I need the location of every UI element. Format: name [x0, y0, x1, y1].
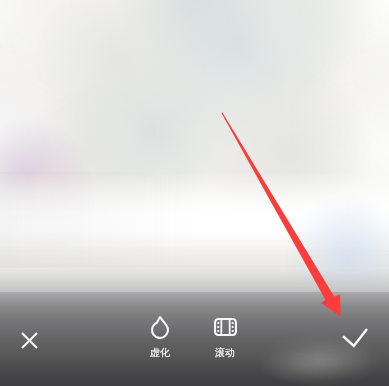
button[interactable]: 虚化: [135, 312, 185, 359]
button[interactable]: 滚动: [200, 312, 250, 359]
staticText: 虚化: [135, 346, 185, 359]
button[interactable]: Confirm: [334, 316, 376, 358]
staticText: 滚动: [200, 346, 250, 359]
button[interactable]: Cancel: [9, 320, 49, 360]
